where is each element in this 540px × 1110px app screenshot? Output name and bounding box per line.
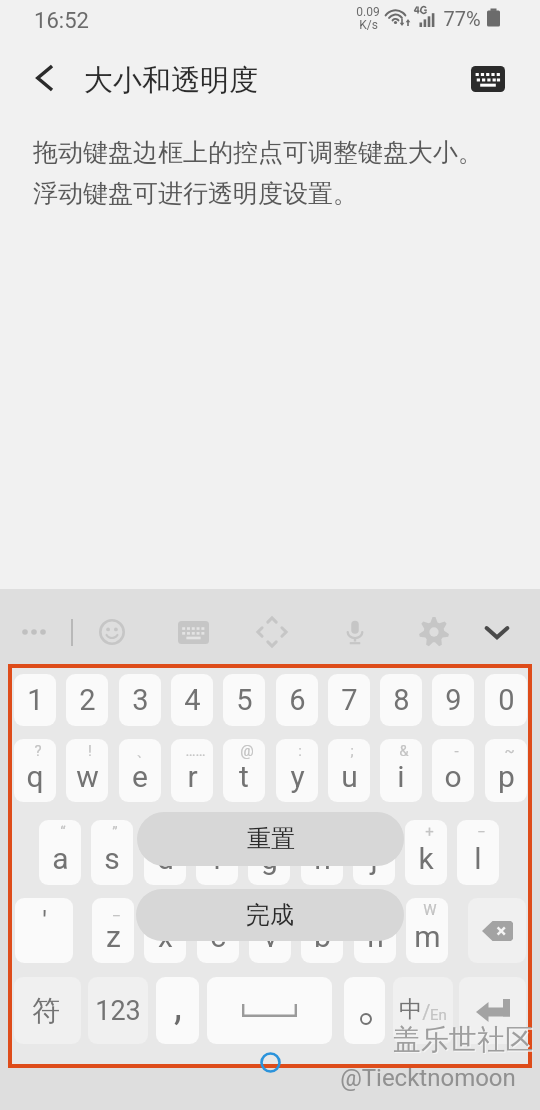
button[interactable]: ~ (485, 739, 527, 802)
button[interactable]: ? (14, 739, 56, 802)
button[interactable]: 9 (432, 674, 474, 726)
button[interactable]: Space (207, 977, 332, 1044)
staticText: s (104, 841, 120, 876)
staticText: / (270, 901, 277, 919)
button[interactable]: Emoji (89, 609, 135, 655)
staticText: + (425, 823, 434, 841)
staticText: l (474, 841, 482, 876)
staticText: − (477, 823, 486, 841)
staticText: h (314, 841, 331, 876)
button[interactable]: 6 (276, 674, 318, 726)
button[interactable]: 2 (66, 674, 108, 726)
staticText: “ (60, 823, 66, 841)
button[interactable]: Keyboard (463, 54, 513, 104)
button[interactable]: “ (39, 820, 81, 885)
button[interactable]: 8 (380, 674, 422, 726)
button[interactable]: 7 (328, 674, 370, 726)
staticText: - (454, 742, 459, 760)
staticText: e (132, 759, 148, 794)
button[interactable]: Enter (459, 977, 526, 1044)
staticText: 77% (443, 7, 481, 30)
button[interactable]: Voice input (332, 609, 378, 655)
button[interactable]: Backspace (468, 898, 526, 963)
staticText: n (367, 919, 384, 954)
button[interactable]: @ (223, 739, 265, 802)
staticText: d (157, 841, 174, 876)
staticText: ” (112, 823, 118, 841)
button[interactable]: : (276, 739, 318, 802)
staticText: 16:52 (34, 8, 89, 34)
button[interactable]: 符 (14, 977, 81, 1044)
button[interactable]: 0 (485, 674, 527, 726)
staticText: x (158, 919, 173, 954)
button[interactable]: , (156, 977, 199, 1044)
button[interactable]: ) (353, 820, 395, 885)
staticText: 符 (32, 993, 60, 1028)
button[interactable]: 3 (119, 674, 161, 726)
staticText: 完成 (246, 900, 294, 930)
button[interactable]: + (405, 820, 447, 885)
staticText: 123 (95, 995, 141, 1027)
button[interactable]: _ (92, 898, 134, 963)
button[interactable]: ' (15, 898, 73, 963)
button[interactable]: 5 (223, 674, 265, 726)
button[interactable]: Settings (411, 609, 457, 655)
button[interactable]: | (197, 898, 239, 963)
staticText: z (106, 919, 121, 954)
button[interactable]: Hide keyboard (474, 609, 520, 655)
button[interactable]: Move keyboard (249, 609, 295, 655)
button[interactable]: " (354, 898, 396, 963)
button[interactable]: ” (91, 820, 133, 885)
button[interactable]: & (380, 739, 422, 802)
button[interactable]: …… (171, 739, 213, 802)
button[interactable]: 4 (171, 674, 213, 726)
button[interactable]: Chinese / English (393, 977, 453, 1044)
staticText: g (261, 841, 278, 876)
staticText: r (187, 759, 198, 794)
staticText: t (239, 759, 249, 794)
staticText: p (498, 759, 515, 794)
staticText: 、 (136, 742, 151, 761)
button[interactable]: ; (328, 739, 370, 802)
button[interactable] (344, 977, 385, 1044)
staticText: 盖乐世社区 (393, 1022, 533, 1057)
button[interactable]: 1 (14, 674, 56, 726)
staticText: En (430, 1006, 447, 1024)
button[interactable]: $ (196, 820, 238, 885)
staticText: 9 (445, 683, 462, 717)
staticText: 1 (27, 683, 44, 717)
staticText: 3 (132, 683, 149, 717)
button[interactable]: ! (66, 739, 108, 802)
button[interactable]: Keyboard layout (170, 609, 216, 655)
staticText: ! (88, 742, 92, 760)
staticText: a (52, 841, 69, 876)
button[interactable]: Back (23, 56, 67, 100)
button[interactable]: 完成 (136, 889, 404, 941)
staticText: 0 (498, 683, 515, 717)
button[interactable]: W (406, 898, 448, 963)
staticText: o (444, 759, 462, 794)
staticText: f (212, 841, 223, 876)
staticText: ¥ (268, 823, 276, 841)
button[interactable]: / (249, 898, 291, 963)
staticText: 6 (289, 683, 306, 717)
button[interactable]: _ (144, 820, 186, 885)
button[interactable]: * (301, 898, 343, 963)
button[interactable]: \ (144, 898, 186, 963)
button[interactable]: 、 (119, 739, 161, 802)
staticText: w (76, 759, 99, 794)
staticText: 大小和透明度 (84, 62, 258, 99)
staticText: y (290, 759, 305, 794)
button[interactable]: − (457, 820, 499, 885)
button[interactable]: ( (301, 820, 343, 885)
staticText: @ (240, 742, 254, 760)
button[interactable]: - (432, 739, 474, 802)
button[interactable]: ¥ (248, 820, 290, 885)
button[interactable]: 重置 (137, 812, 404, 866)
button[interactable]: More options (11, 609, 57, 655)
button[interactable]: 123 (88, 977, 148, 1044)
